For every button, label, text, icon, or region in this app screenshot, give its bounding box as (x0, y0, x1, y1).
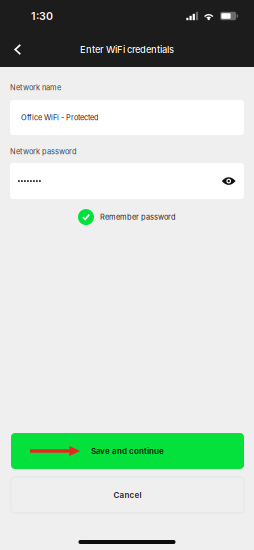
button[interactable]: Show password (213, 163, 244, 199)
staticText: Save and continue (91, 446, 164, 456)
staticText: 1:30 (31, 9, 53, 22)
staticText: Office WiFi - Protected (21, 113, 98, 122)
staticText: Enter WiFi credentials (80, 44, 174, 55)
staticText: Network name (10, 83, 61, 92)
button[interactable]: Office WiFi - Protected (10, 100, 244, 135)
staticText: Cancel (113, 490, 141, 500)
button[interactable]: Remember password (78, 207, 176, 227)
button[interactable]: Cancel (11, 477, 244, 513)
button[interactable]: Save and continue (11, 433, 244, 469)
button[interactable]: Back (0, 34, 33, 65)
staticText: Network password (10, 147, 77, 156)
button[interactable]: Network password field (10, 163, 213, 199)
staticText: Remember password (100, 212, 176, 221)
